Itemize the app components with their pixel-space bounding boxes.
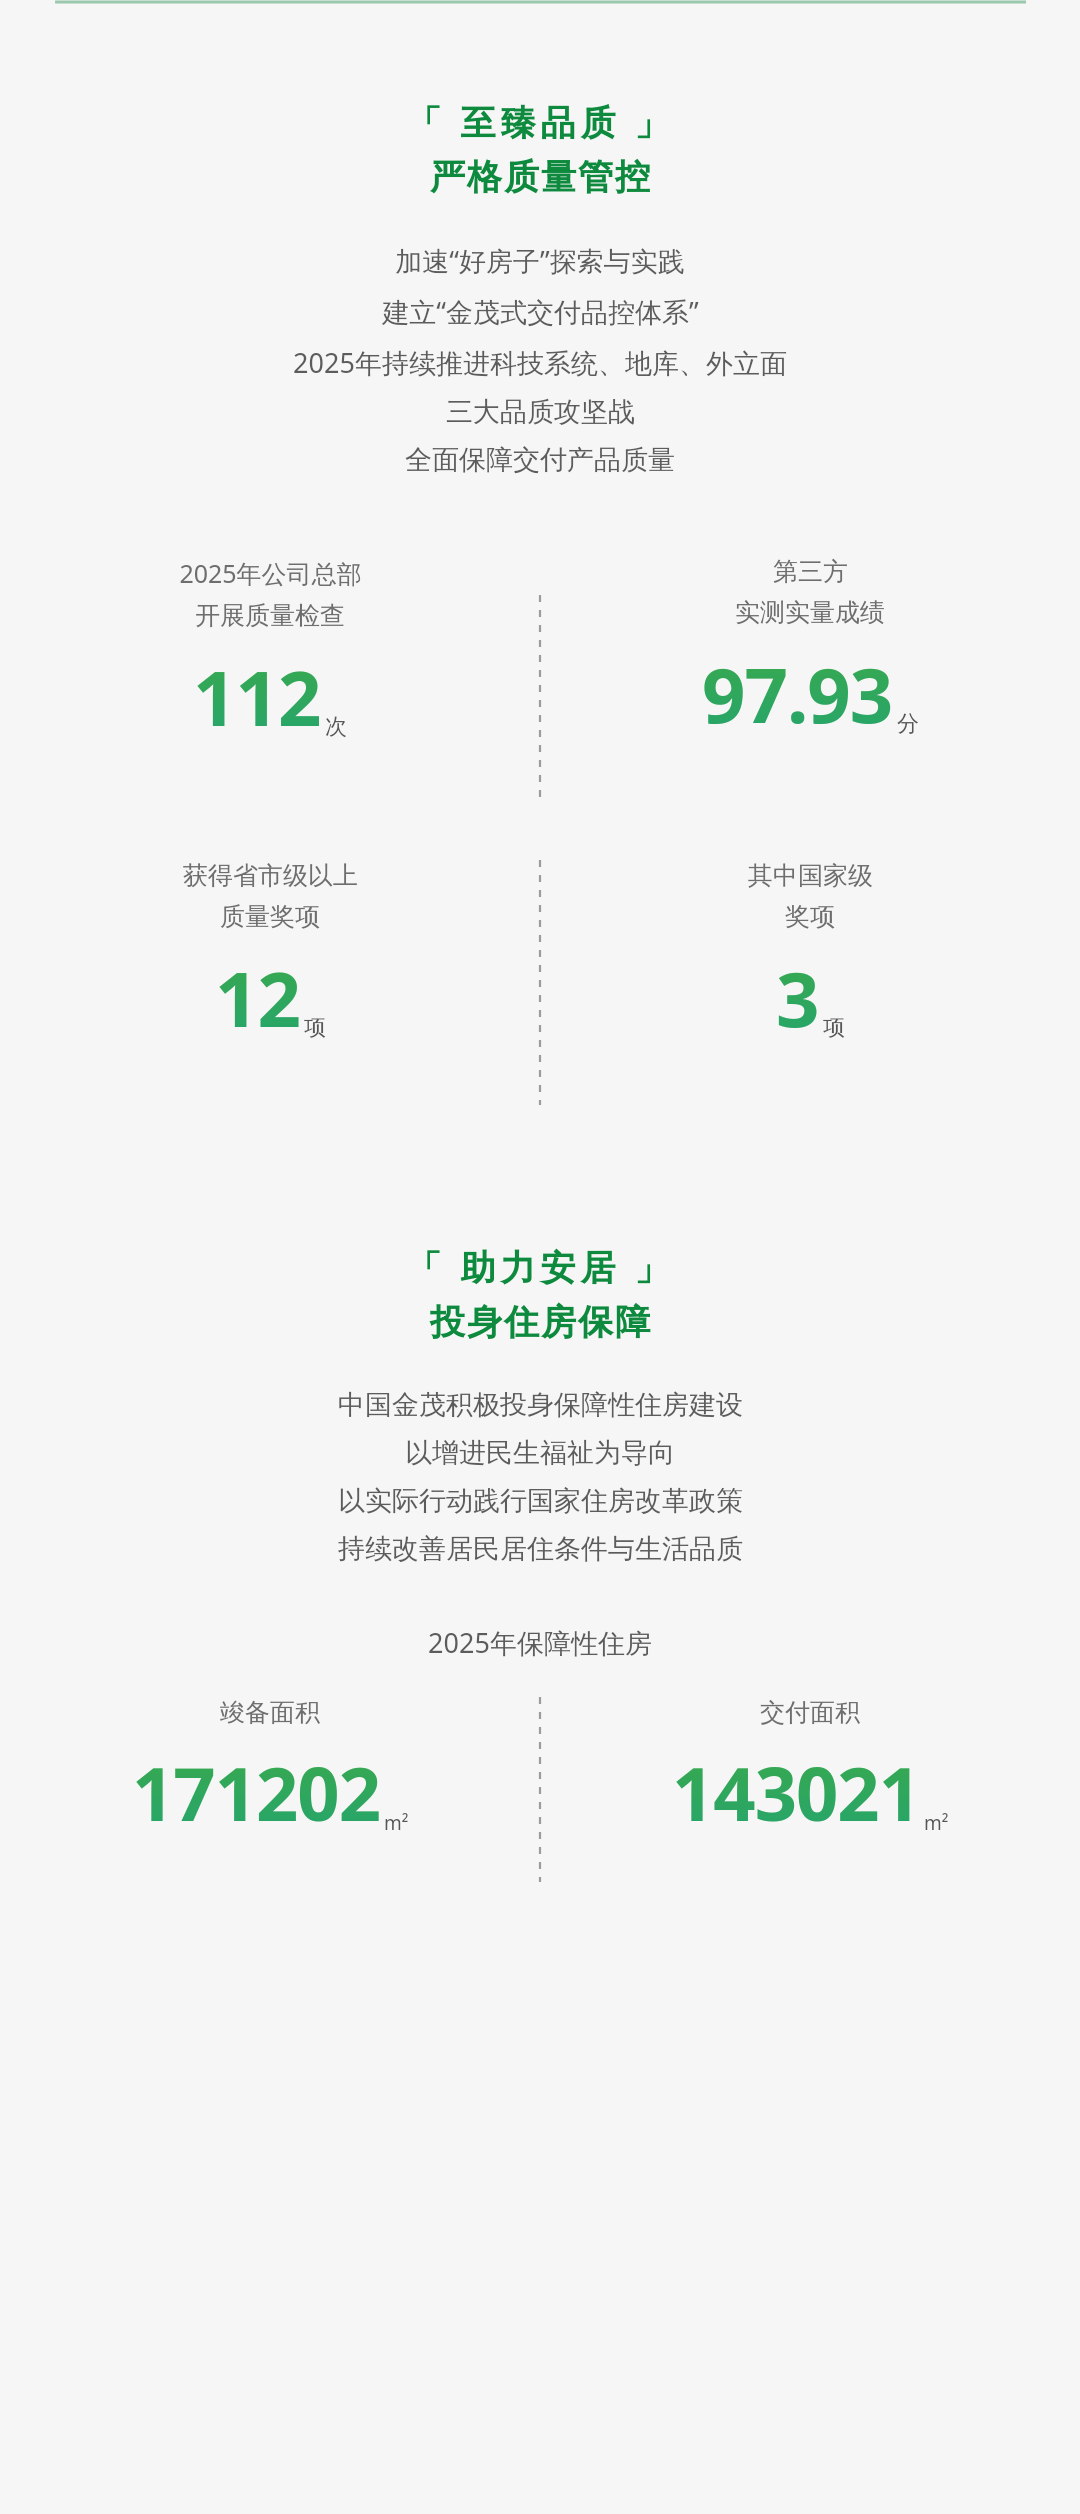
staticText: 分 <box>897 710 919 738</box>
staticText: 获得省市级以上 <box>183 860 358 891</box>
staticText: 2025年持续推进科技系统、地库、外立面 <box>293 344 787 381</box>
staticText: 交付面积 <box>760 1697 860 1728</box>
staticText: 全面保障交付产品质量 <box>405 443 675 477</box>
staticText: 质量奖项 <box>220 901 320 932</box>
button[interactable]: 第三方 <box>540 556 1080 746</box>
staticText: 以实际行动践行国家住房改革政策 <box>338 1484 743 1518</box>
staticText: 「 至臻品质 」 <box>406 98 675 146</box>
staticText: 以增进民生福祉为导向 <box>405 1436 675 1470</box>
staticText: 严格质量管控 <box>429 155 651 199</box>
staticText: 第三方 <box>773 556 848 587</box>
staticText: 2025年公司总部 <box>179 556 362 590</box>
staticText: 开展质量检查 <box>195 600 345 631</box>
staticText: 97.93 <box>702 642 893 746</box>
staticText: 143021 <box>672 1742 920 1843</box>
staticText: 项 <box>823 1014 845 1042</box>
staticText: 171202 <box>132 1742 380 1843</box>
staticText: 建立“金茂式交付品控体系” <box>382 293 699 330</box>
staticText: 其中国家级 <box>748 860 873 891</box>
button[interactable]: 获得省市级以上 <box>0 860 540 1050</box>
staticText: 奖项 <box>785 901 835 932</box>
staticText: 「 助力安居 」 <box>406 1243 675 1291</box>
button[interactable]: 2025年公司总部 <box>0 556 540 749</box>
staticText: 2025年保障性住房 <box>0 1624 1080 1661</box>
staticText: 项 <box>304 1014 326 1042</box>
staticText: 投身住房保障 <box>429 1300 651 1344</box>
staticText: 112 <box>193 645 321 749</box>
staticText: 12 <box>215 946 300 1050</box>
staticText: 实测实量成绩 <box>735 597 885 628</box>
staticText: m² <box>384 1810 409 1836</box>
staticText: 持续改善居民居住条件与生活品质 <box>338 1532 743 1566</box>
staticText: 3 <box>776 946 819 1050</box>
staticText: m² <box>924 1810 949 1836</box>
staticText: 竣备面积 <box>220 1697 320 1728</box>
staticText: 三大品质攻坚战 <box>446 395 635 429</box>
staticText: 加速“好房子”探索与实践 <box>395 242 685 279</box>
button[interactable]: 竣备面积 <box>0 1697 540 1843</box>
button[interactable]: 交付面积 <box>540 1697 1080 1843</box>
staticText: 次 <box>325 713 347 741</box>
staticText: 中国金茂积极投身保障性住房建设 <box>338 1388 743 1422</box>
button[interactable]: 其中国家级 <box>540 860 1080 1050</box>
